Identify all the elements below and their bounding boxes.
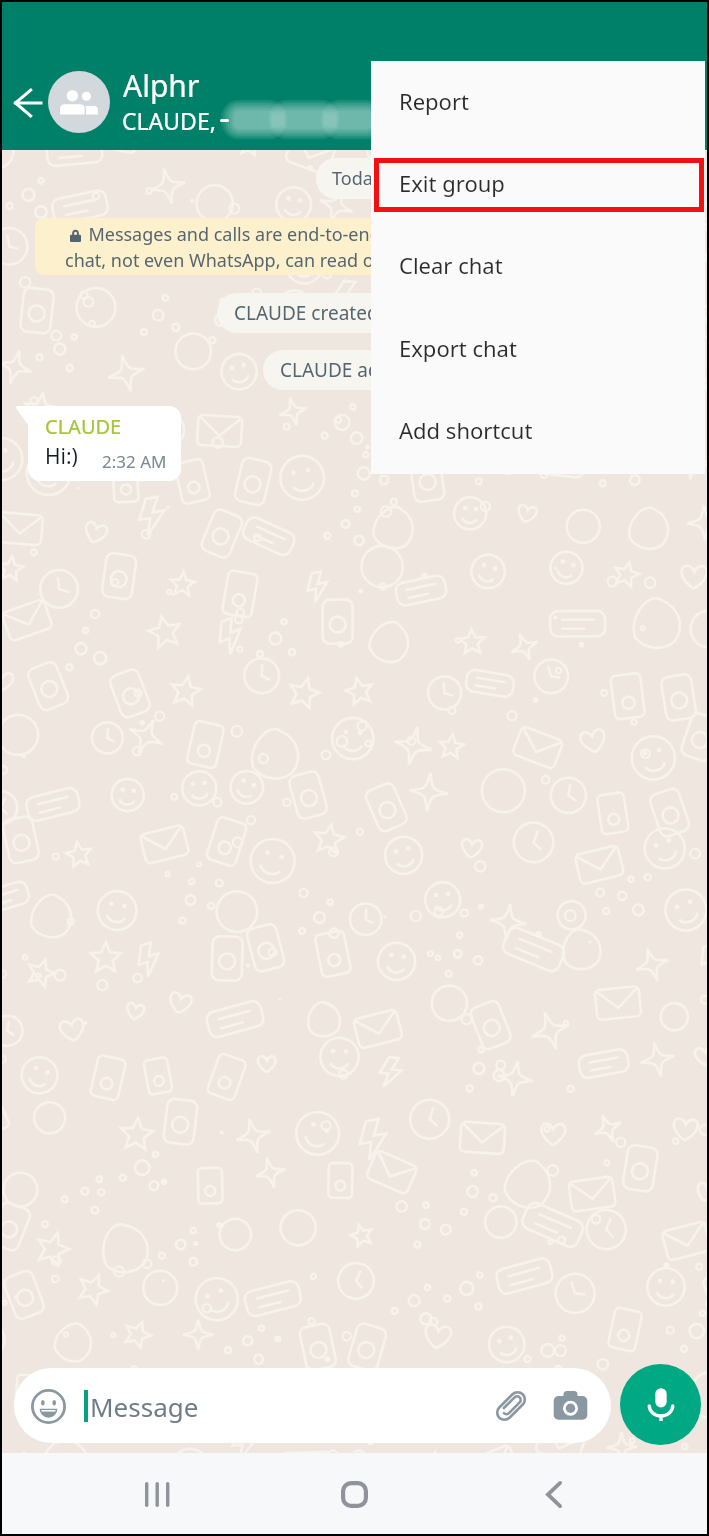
- button[interactable]: Exit group: [371, 142, 705, 224]
- staticText: Add shortcut: [399, 415, 533, 445]
- staticText: CLAUDE: [45, 413, 122, 440]
- staticText: CLAUDE add: [280, 357, 392, 383]
- staticText: Today: [332, 166, 382, 191]
- staticText: Hi:): [45, 442, 78, 471]
- button[interactable]: Voice message: [620, 1364, 701, 1445]
- staticText: Messages and calls are end-to-end chat, …: [65, 222, 382, 272]
- staticText: Export chat: [399, 333, 517, 363]
- button[interactable]: More options: [352, 75, 400, 123]
- button[interactable]: Clear chat: [371, 224, 705, 306]
- button[interactable]: Report: [371, 60, 705, 142]
- staticText: CLAUDE,: [122, 105, 222, 136]
- button[interactable]: Home: [314, 1453, 394, 1536]
- staticText: CLAUDE created: [234, 300, 379, 326]
- staticText: 2:32 AM: [102, 450, 167, 473]
- button[interactable]: Group avatar: [48, 71, 110, 133]
- staticText: Message: [90, 1389, 199, 1424]
- button[interactable]: Export chat: [371, 307, 705, 389]
- button[interactable]: Back: [514, 1453, 594, 1536]
- button[interactable]: Message: [14, 1368, 611, 1443]
- staticText: Exit group: [399, 168, 505, 198]
- staticText: Alphr: [123, 65, 200, 106]
- button[interactable]: Back: [5, 80, 51, 126]
- staticText: Clear chat: [399, 250, 503, 280]
- staticText: Report: [399, 86, 469, 116]
- button[interactable]: Add shortcut: [371, 389, 705, 471]
- button[interactable]: Recents: [119, 1453, 199, 1536]
